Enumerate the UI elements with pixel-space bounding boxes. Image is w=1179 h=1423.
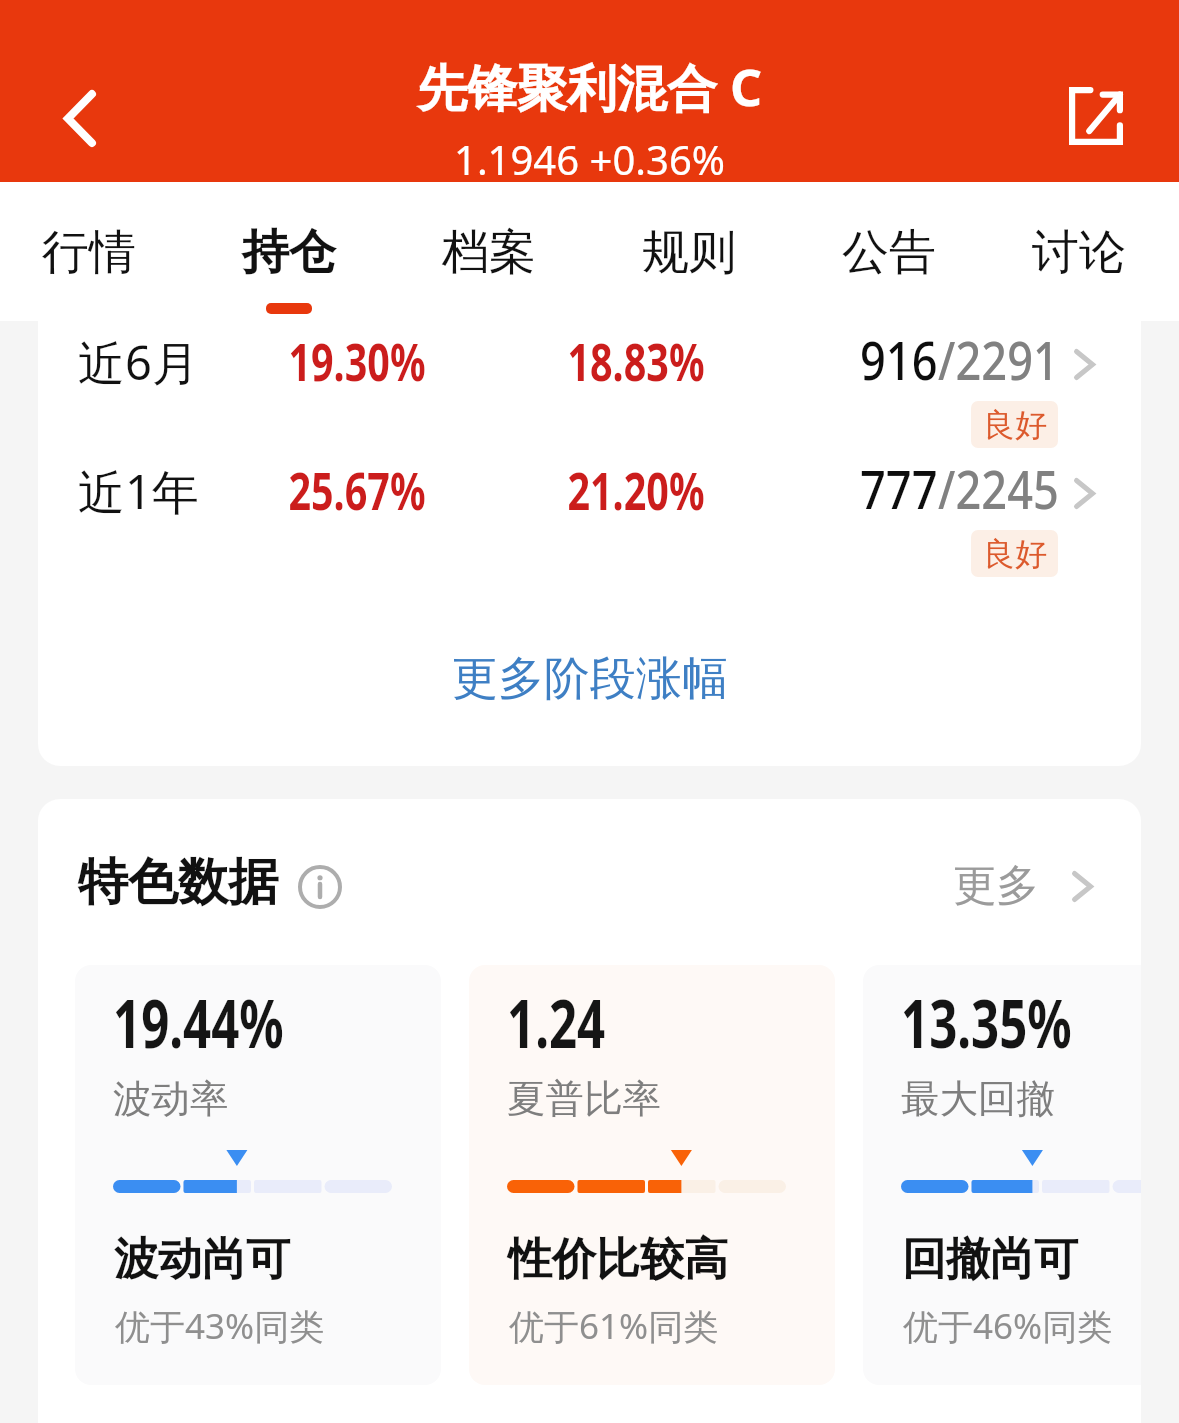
staticText: 近1年 [78,459,199,523]
button[interactable]: 19.44% [75,965,441,1385]
staticText: 良好 [983,534,1047,574]
staticText: 近6月 [78,330,199,394]
staticText: 先锋聚利混合 C [417,53,763,121]
staticText: 规则 [642,223,736,282]
staticText: 21.20% [552,454,720,525]
staticText: 1.24 [507,977,605,1067]
button[interactable]: 更多阶段涨幅 [438,644,741,714]
button[interactable]: 规则 [589,182,789,321]
staticText: 波动尚可 [114,1232,290,1287]
staticText: 优于46%同类 [903,1302,1113,1350]
staticText: 19.30% [273,325,441,396]
staticText: 19.44% [113,977,284,1067]
staticText: 行情 [42,223,136,282]
staticText: 1.1946 +0.36% [454,132,725,182]
button[interactable]: 公告 [789,182,989,321]
button[interactable]: 更多 [953,846,1093,926]
staticText: 18.83% [552,325,720,396]
staticText: 持仓 [242,223,336,282]
staticText: 公告 [842,223,936,282]
staticText: 25.67% [273,454,441,525]
button[interactable]: 13.35% [863,965,1141,1385]
staticText: 讨论 [1032,223,1126,282]
staticText: /2291 [938,324,1059,395]
staticText: 优于61%同类 [509,1302,719,1350]
button[interactable]: 近6月 [38,321,1141,450]
staticText: 最大回撤 [901,1075,1055,1124]
button[interactable]: Share [1046,66,1146,166]
staticText: 916 [860,324,938,395]
staticText: 特色数据 [78,851,278,914]
button[interactable]: 持仓 [189,182,389,321]
button[interactable]: 近1年 [38,450,1141,579]
staticText: 13.35% [901,977,1072,1067]
button[interactable]: 档案 [389,182,589,321]
staticText: 夏普比率 [507,1075,661,1124]
button[interactable]: 1.24 [469,965,835,1385]
staticText: 性价比较高 [508,1232,728,1287]
button[interactable]: Back [30,68,130,168]
staticText: 优于43%同类 [115,1302,325,1350]
staticText: 良好 [983,405,1047,445]
button[interactable]: 讨论 [989,182,1168,321]
button[interactable]: 行情 [0,182,189,321]
staticText: 波动率 [113,1075,229,1124]
staticText: 档案 [442,223,536,282]
staticText: /2245 [938,453,1059,524]
staticText: 777 [860,453,938,524]
staticText: 更多 [953,859,1039,913]
staticText: 回撤尚可 [902,1232,1078,1287]
staticText: 更多阶段涨幅 [452,650,728,708]
